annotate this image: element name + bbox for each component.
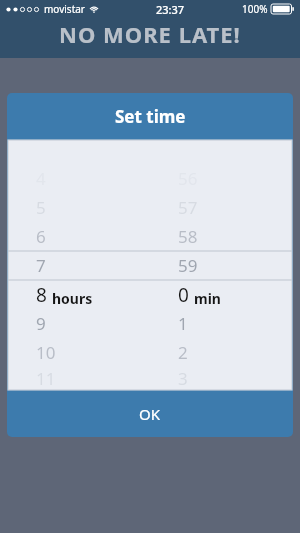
- staticText: NO MORE LATE!: [59, 19, 241, 49]
- button[interactable]: OK: [7, 390, 293, 437]
- staticText: 8: [36, 282, 47, 308]
- button[interactable]: 4: [8, 140, 150, 390]
- staticText: 11: [36, 367, 56, 390]
- staticText: OK: [139, 404, 161, 424]
- staticText: hours: [52, 289, 93, 308]
- staticText: 10: [36, 341, 56, 364]
- staticText: 0: [178, 282, 189, 308]
- staticText: 7: [36, 254, 46, 277]
- staticText: 23:37: [156, 2, 185, 17]
- staticText: 2: [178, 341, 188, 364]
- staticText: min: [194, 289, 221, 308]
- staticText: 3: [178, 367, 188, 390]
- staticText: 9: [36, 312, 46, 335]
- staticText: 59: [178, 254, 198, 277]
- staticText: 5: [36, 196, 46, 219]
- staticText: 57: [178, 196, 198, 219]
- staticText: 1: [178, 312, 188, 335]
- staticText: 58: [178, 225, 198, 248]
- staticText: Set time: [115, 105, 186, 128]
- staticText: movistar: [44, 2, 85, 16]
- staticText: 6: [36, 225, 46, 248]
- button[interactable]: 56: [150, 140, 292, 390]
- staticText: 100%: [242, 2, 268, 16]
